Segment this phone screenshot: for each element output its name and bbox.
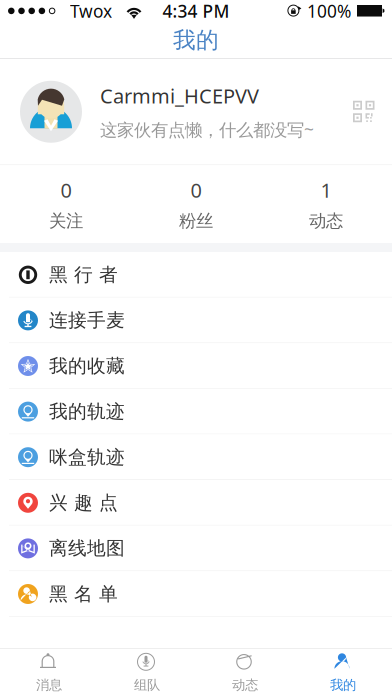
button[interactable]: 消息 <box>0 648 98 696</box>
button[interactable]: 咪盒轨迹 <box>0 434 392 480</box>
staticText: 我的收藏 <box>49 354 125 377</box>
button[interactable]: Carmmi_HCEPVV <box>0 59 392 164</box>
staticText: 这家伙有点懒，什么都没写~ <box>100 118 314 141</box>
staticText: 连接手麦 <box>49 309 125 332</box>
button[interactable]: 组队 <box>98 648 196 696</box>
staticText: 粉丝 <box>179 210 213 231</box>
staticText: 0 <box>190 177 201 203</box>
button[interactable]: 离线地图 <box>0 526 392 571</box>
button[interactable]: 我的 <box>294 648 392 696</box>
staticText: 我的轨迹 <box>49 400 125 423</box>
button[interactable]: 黑 名 单 <box>0 571 392 617</box>
staticText: 100% <box>307 0 351 22</box>
staticText: 动态 <box>232 677 258 693</box>
button[interactable]: 1 <box>261 166 391 242</box>
staticText: 黑 行 者 <box>49 263 118 286</box>
staticText: Carmmi_HCEPVV <box>100 82 259 109</box>
staticText: 咪盒轨迹 <box>49 446 125 469</box>
staticText: 4:34 PM <box>162 0 229 22</box>
button[interactable]: 黑 行 者 <box>0 252 392 298</box>
staticText: 0 <box>60 177 71 203</box>
staticText: 黑 名 单 <box>49 582 118 605</box>
button[interactable]: 我的轨迹 <box>0 389 392 434</box>
staticText: 1 <box>320 177 331 203</box>
button[interactable]: 兴 趣 点 <box>0 480 392 526</box>
staticText: Twox <box>70 0 112 22</box>
staticText: 离线地图 <box>49 537 125 560</box>
staticText: 我的 <box>173 26 219 54</box>
staticText: 关注 <box>49 210 83 231</box>
button[interactable]: 0 <box>131 166 261 242</box>
staticText: 组队 <box>134 677 160 693</box>
staticText: 消息 <box>36 677 62 693</box>
staticText: 我的 <box>330 677 356 693</box>
button[interactable]: 我的收藏 <box>0 343 392 389</box>
staticText: 兴 趣 点 <box>49 491 118 514</box>
button[interactable]: 0 <box>1 166 131 242</box>
button[interactable]: 动态 <box>196 648 294 696</box>
button[interactable]: 连接手麦 <box>0 298 392 343</box>
staticText: 动态 <box>309 210 343 231</box>
